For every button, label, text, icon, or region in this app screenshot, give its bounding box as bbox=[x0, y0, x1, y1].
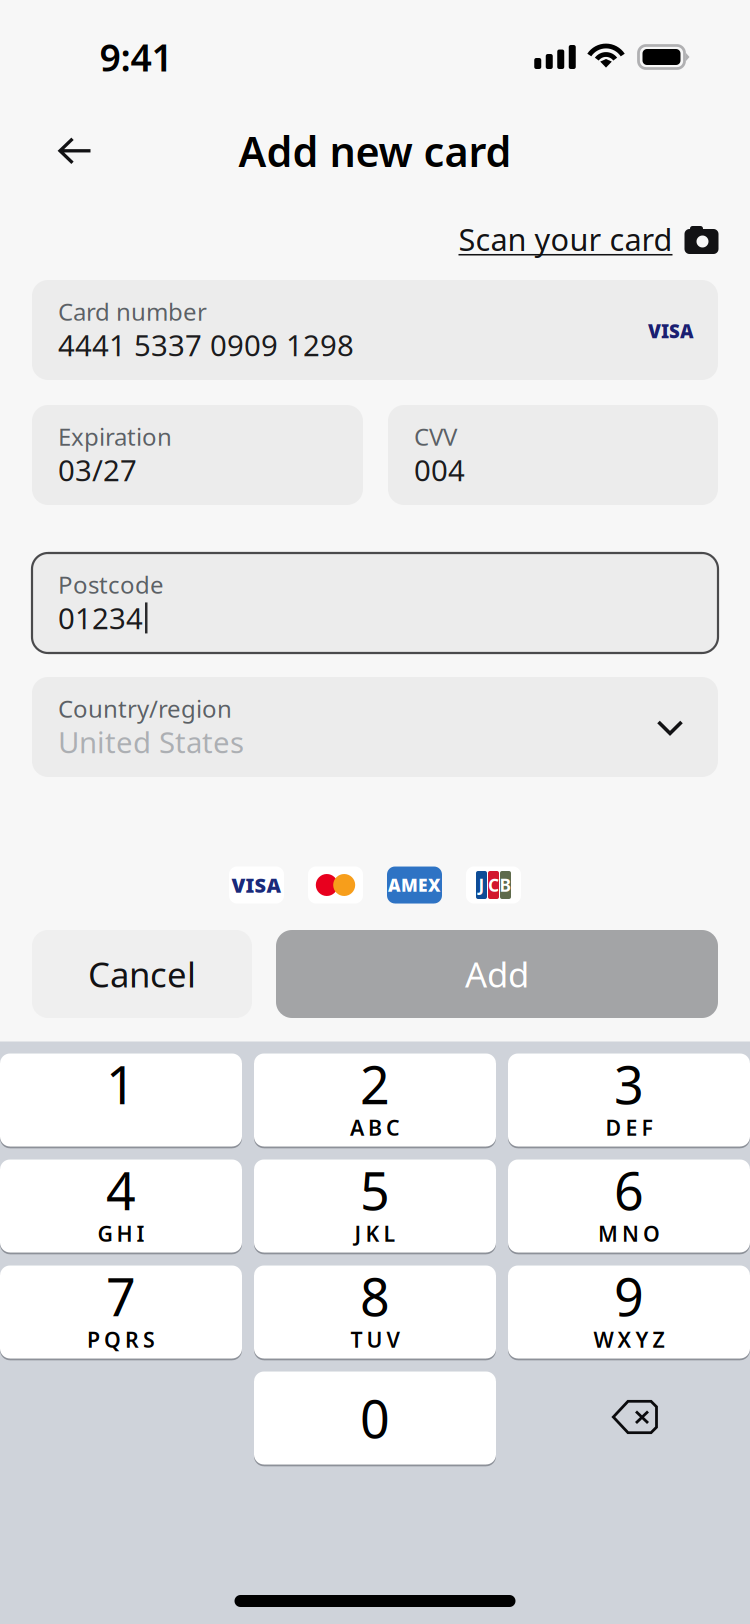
staticText: 8 bbox=[360, 1261, 390, 1331]
button[interactable]: 9 bbox=[508, 1265, 750, 1358]
button[interactable]: 2 bbox=[254, 1053, 496, 1146]
button[interactable]: Cancel bbox=[32, 930, 252, 1018]
staticText: 2 bbox=[360, 1049, 390, 1119]
staticText: Add bbox=[465, 951, 529, 997]
staticText: 9 bbox=[614, 1261, 644, 1331]
button[interactable]: CVV bbox=[388, 405, 718, 505]
staticText: 5 bbox=[360, 1155, 390, 1225]
button[interactable]: 5 bbox=[254, 1159, 496, 1252]
staticText: VISA bbox=[231, 872, 281, 898]
staticText: Postcode bbox=[58, 569, 164, 600]
button[interactable]: Country/region bbox=[32, 677, 718, 777]
staticText: 03/27 bbox=[58, 450, 137, 489]
staticText: VISA bbox=[648, 319, 694, 343]
button[interactable]: Delete bbox=[508, 1371, 750, 1464]
button[interactable]: Back bbox=[38, 114, 112, 188]
button[interactable]: Postcode bbox=[32, 553, 718, 653]
staticText: Country/region bbox=[58, 693, 232, 724]
staticText: P Q R S bbox=[87, 1325, 155, 1354]
button[interactable]: Scan your card bbox=[452, 213, 725, 265]
staticText: W X Y Z bbox=[593, 1325, 664, 1354]
button[interactable]: 8 bbox=[254, 1265, 496, 1358]
staticText: J K L bbox=[354, 1219, 395, 1248]
button[interactable]: 1 bbox=[0, 1053, 242, 1146]
staticText: 4441 5337 0909 1298 bbox=[58, 325, 354, 364]
staticText: 9:41 bbox=[99, 32, 172, 82]
staticText: United States bbox=[58, 722, 244, 761]
staticText: 4 bbox=[106, 1155, 136, 1225]
staticText: J bbox=[478, 873, 484, 896]
button[interactable]: 7 bbox=[0, 1265, 242, 1358]
button[interactable]: Expiration bbox=[32, 405, 363, 505]
staticText: 01234 bbox=[58, 598, 143, 637]
staticText: C bbox=[488, 873, 499, 896]
staticText: T U V bbox=[350, 1325, 399, 1354]
button[interactable]: 4 bbox=[0, 1159, 242, 1252]
staticText: Scan your card bbox=[458, 219, 672, 259]
staticText: A B C bbox=[350, 1113, 400, 1142]
staticText: Cancel bbox=[88, 951, 196, 997]
staticText: M N O bbox=[598, 1219, 660, 1248]
staticText: 6 bbox=[614, 1155, 644, 1225]
staticText: D E F bbox=[605, 1113, 652, 1142]
staticText: AMEX bbox=[388, 873, 441, 896]
staticText: CVV bbox=[414, 421, 457, 452]
staticText: Add new card bbox=[238, 124, 511, 178]
button[interactable]: 6 bbox=[508, 1159, 750, 1252]
button[interactable]: Card number bbox=[32, 280, 718, 380]
staticText: B bbox=[499, 873, 511, 896]
staticText: 1 bbox=[106, 1049, 136, 1119]
button[interactable]: 3 bbox=[508, 1053, 750, 1146]
staticText: 3 bbox=[614, 1049, 644, 1119]
staticText: 004 bbox=[414, 450, 465, 489]
staticText: 0 bbox=[360, 1383, 390, 1453]
staticText: Card number bbox=[58, 296, 207, 327]
staticText: G H I bbox=[97, 1219, 144, 1248]
staticText: Expiration bbox=[58, 421, 172, 452]
button[interactable]: 0 bbox=[254, 1371, 496, 1464]
button[interactable]: Add bbox=[276, 930, 718, 1018]
staticText: 7 bbox=[106, 1261, 136, 1331]
